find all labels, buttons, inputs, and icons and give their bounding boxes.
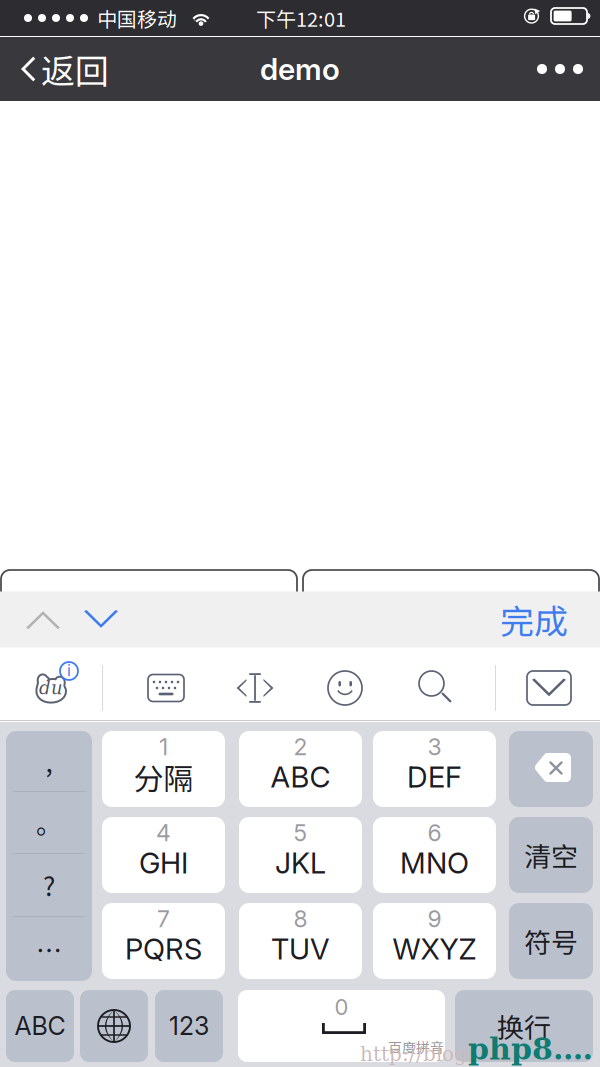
button[interactable]: Emoji	[303, 655, 387, 721]
staticText: 2	[293, 733, 307, 761]
staticText: 4	[156, 819, 171, 847]
staticText: du	[39, 677, 63, 698]
staticText: 7	[157, 905, 170, 933]
staticText: 9	[427, 905, 441, 933]
button[interactable]: Move cursor	[213, 655, 297, 721]
button[interactable]: Switch keyboard	[80, 990, 148, 1062]
button[interactable]: 完成	[489, 591, 579, 647]
button[interactable]: 返回	[6, 37, 119, 101]
staticText: http://blog.csdn	[360, 1042, 520, 1066]
staticText: 分隔	[133, 755, 193, 799]
staticText: 清空	[524, 835, 578, 875]
button[interactable]: 7	[102, 903, 225, 979]
button[interactable]: More	[527, 37, 593, 101]
button[interactable]: Previous	[12, 591, 74, 647]
button[interactable]: Baidu input	[0, 655, 102, 721]
staticText: ,	[45, 742, 52, 780]
button[interactable]: Next	[70, 591, 132, 647]
button[interactable]: 6	[373, 817, 496, 893]
button[interactable]: Delete	[509, 731, 593, 807]
button[interactable]: 2	[239, 731, 362, 807]
staticText: MNO	[400, 845, 469, 881]
staticText: 完成	[500, 595, 568, 644]
button[interactable]: 换行	[455, 990, 593, 1062]
button[interactable]: 3	[373, 731, 496, 807]
button[interactable]: Space	[238, 990, 445, 1062]
staticText: 返回	[41, 44, 109, 94]
button[interactable]: 。	[6, 792, 92, 853]
staticText: …	[36, 930, 62, 968]
staticText: PQRS	[125, 931, 202, 967]
button[interactable]: 清空	[509, 817, 593, 893]
button[interactable]: 4	[102, 817, 225, 893]
staticText: DEF	[407, 759, 462, 795]
staticText: GHI	[139, 845, 188, 881]
staticText: php8.org	[468, 1031, 600, 1067]
button[interactable]: ,	[6, 731, 92, 791]
button[interactable]: 8	[239, 903, 362, 979]
button[interactable]: Hide keyboard	[509, 655, 589, 721]
staticText: 换行	[497, 1006, 551, 1046]
button[interactable]: …	[6, 917, 92, 981]
staticText: ABC	[14, 1011, 65, 1041]
staticText: TUV	[271, 931, 330, 967]
staticText: JKL	[275, 845, 326, 881]
button[interactable]: 符号	[509, 903, 593, 979]
staticText: 中国移动	[97, 3, 177, 32]
staticText: 。	[36, 804, 62, 841]
staticText: 8	[293, 905, 307, 933]
staticText: 0	[334, 994, 348, 1020]
button[interactable]: 123	[155, 990, 223, 1062]
staticText: 下午12:01	[256, 3, 346, 32]
button[interactable]: 5	[239, 817, 362, 893]
staticText: 3	[427, 733, 441, 761]
staticText: 百度拼音	[388, 1037, 444, 1057]
staticText: ?	[43, 866, 55, 904]
staticText: 123	[169, 1011, 209, 1041]
button[interactable]: Search	[394, 655, 478, 721]
staticText: 6	[427, 819, 441, 847]
button[interactable]: 9	[373, 903, 496, 979]
button[interactable]: ?	[6, 854, 92, 916]
staticText: WXYZ	[392, 931, 476, 967]
staticText: 1	[159, 733, 168, 761]
staticText: ABC	[270, 759, 330, 795]
staticText: demo	[260, 51, 340, 87]
staticText: 符号	[524, 921, 578, 961]
staticText: i	[67, 661, 71, 680]
button[interactable]: Keyboard layout	[124, 655, 208, 721]
staticText: 5	[293, 819, 307, 847]
button[interactable]: ABC	[6, 990, 74, 1062]
button[interactable]: 1	[102, 731, 225, 807]
